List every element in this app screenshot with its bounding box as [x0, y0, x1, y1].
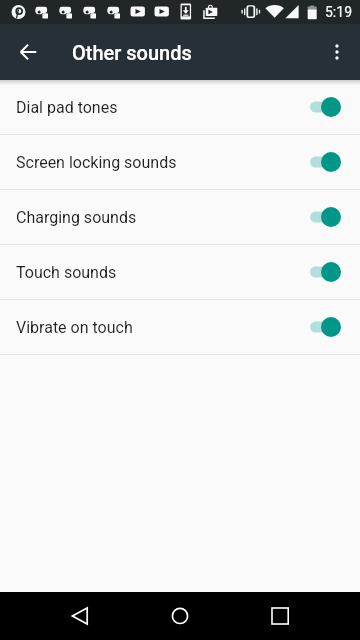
- button[interactable]: Touch sounds: [0, 245, 360, 300]
- staticText: Screen locking sounds: [16, 153, 177, 172]
- staticText: Charging sounds: [16, 208, 137, 227]
- staticText: Vibrate on touch: [16, 318, 133, 337]
- button[interactable]: Navigate up: [0, 24, 56, 80]
- button[interactable]: Back: [56, 592, 104, 640]
- button[interactable]: Screen locking sounds: [0, 135, 360, 190]
- button[interactable]: Vibrate on touch: [0, 300, 360, 355]
- button[interactable]: Home: [156, 592, 204, 640]
- button[interactable]: Recent apps: [256, 592, 304, 640]
- staticText: 5:19: [325, 4, 352, 20]
- button[interactable]: Dial pad tones: [0, 80, 360, 135]
- staticText: Other sounds: [72, 41, 192, 64]
- button[interactable]: Charging sounds: [0, 190, 360, 245]
- staticText: Touch sounds: [16, 263, 117, 282]
- staticText: Dial pad tones: [16, 98, 118, 117]
- button[interactable]: More options: [314, 24, 360, 80]
